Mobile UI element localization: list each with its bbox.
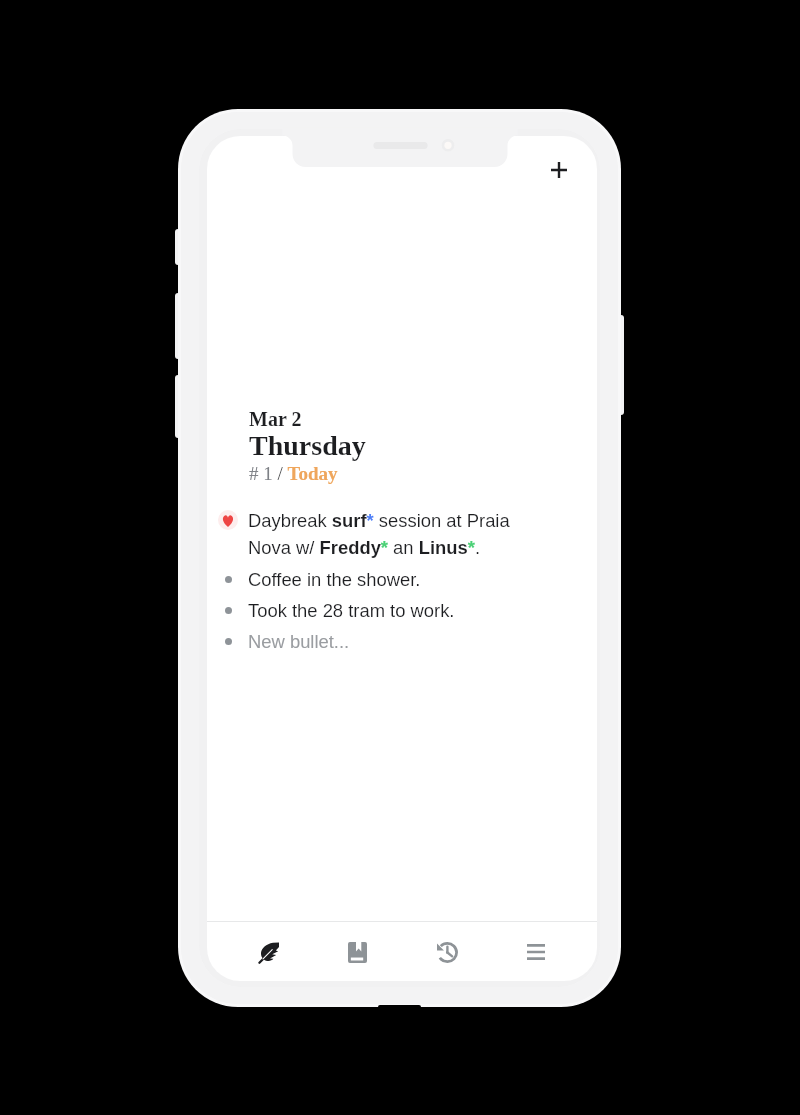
staticText: Daybreak surf* session at Praia Nova w/ … bbox=[248, 510, 536, 558]
button[interactable]: Took the 28 tram to work. bbox=[207, 600, 596, 621]
staticText: # 1 / Today bbox=[249, 463, 338, 484]
staticText: Thursday bbox=[249, 430, 366, 461]
button[interactable]: Notebooks bbox=[314, 924, 403, 979]
button[interactable]: Menu bbox=[492, 924, 581, 979]
button[interactable]: New bullet... bbox=[207, 631, 596, 652]
button[interactable]: New entry bbox=[530, 141, 587, 198]
staticText: Took the 28 tram to work. bbox=[248, 600, 455, 621]
button[interactable]: Journal bbox=[224, 924, 314, 979]
button[interactable]: Daybreak surf* session at Praia Nova w/ … bbox=[207, 510, 596, 558]
staticText: Mar 2 bbox=[249, 408, 302, 430]
button[interactable]: History bbox=[403, 924, 492, 979]
staticText: Coffee in the shower. bbox=[248, 569, 421, 590]
button[interactable]: Coffee in the shower. bbox=[207, 569, 596, 590]
staticText: New bullet... bbox=[248, 631, 350, 652]
